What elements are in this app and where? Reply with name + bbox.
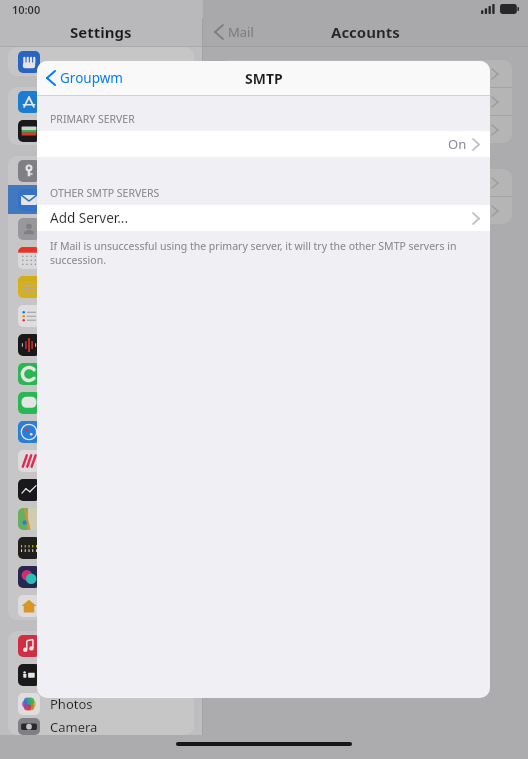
button[interactable]: Camera (8, 718, 194, 735)
button[interactable] (8, 301, 194, 330)
button[interactable] (8, 562, 194, 591)
button[interactable] (8, 87, 194, 116)
staticText: Photos (50, 695, 93, 713)
button[interactable] (8, 330, 194, 359)
staticText: SMTP (245, 69, 283, 88)
button[interactable] (219, 60, 512, 87)
button[interactable]: Back to Mail (215, 23, 254, 41)
staticText: Camera (50, 718, 98, 735)
staticText: Mail (228, 23, 254, 41)
button[interactable] (8, 388, 194, 417)
button[interactable] (8, 631, 194, 660)
button[interactable] (8, 475, 194, 504)
button[interactable]: Photos (8, 689, 194, 718)
button[interactable] (8, 47, 194, 76)
button[interactable] (219, 88, 512, 115)
button[interactable]: On (37, 131, 490, 157)
staticText: Accounts (331, 22, 400, 42)
button[interactable] (8, 591, 194, 620)
button[interactable] (8, 214, 194, 243)
button[interactable]: Groupwm (47, 69, 123, 87)
staticText: Add Server... (50, 209, 129, 227)
button[interactable] (8, 533, 194, 562)
button[interactable] (8, 116, 194, 145)
button[interactable] (8, 243, 194, 272)
staticText: If Mail is unsuccessful using the primar… (50, 239, 474, 267)
button[interactable] (8, 272, 194, 301)
staticText: PRIMARY SERVER (50, 112, 135, 126)
staticText: OTHER SMTP SERVERS (50, 186, 160, 200)
button[interactable]: Add Server... (37, 205, 490, 231)
staticText: On (448, 135, 467, 153)
button[interactable] (8, 185, 194, 214)
button[interactable] (8, 359, 194, 388)
button[interactable] (8, 660, 194, 689)
button[interactable] (219, 169, 512, 196)
staticText: Groupwm (60, 69, 123, 87)
button[interactable] (219, 197, 512, 224)
button[interactable] (219, 116, 512, 143)
button[interactable] (8, 504, 194, 533)
button[interactable] (8, 156, 194, 185)
staticText: 10:00 (12, 2, 41, 17)
button[interactable] (8, 446, 194, 475)
button[interactable] (8, 417, 194, 446)
staticText: Settings (70, 22, 132, 42)
